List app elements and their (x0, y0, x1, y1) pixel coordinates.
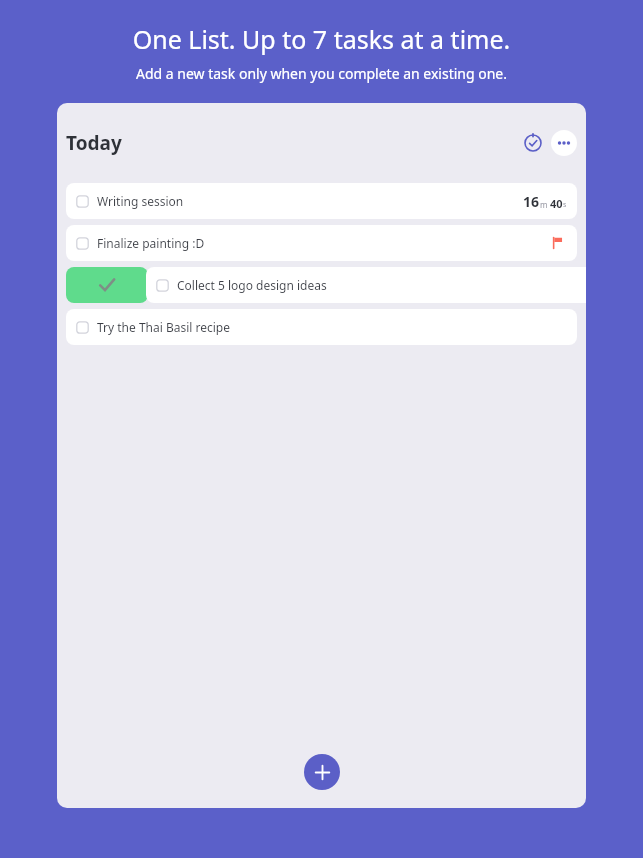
staticText: s (563, 200, 567, 210)
staticText: Collect 5 logo design ideas (177, 277, 327, 293)
button[interactable]: Try the Thai Basil recipe (66, 309, 577, 345)
button[interactable]: Writing session (66, 183, 577, 219)
staticText: Finalize painting :D (97, 235, 205, 251)
staticText: One List. Up to 7 tasks at a time. (0, 22, 643, 56)
button[interactable]: Collect 5 logo design ideas (146, 267, 586, 303)
button[interactable]: Complete all (519, 129, 547, 157)
staticText: m (540, 199, 548, 210)
staticText: Add a new task only when you complete an… (0, 64, 643, 83)
staticText: Today (66, 130, 122, 156)
staticText: Try the Thai Basil recipe (97, 319, 231, 335)
button[interactable]: Finalize painting :D (66, 225, 577, 261)
staticText: Writing session (97, 193, 184, 209)
button[interactable]: Complete task (66, 267, 148, 303)
staticText: 40 (550, 196, 563, 211)
button[interactable]: Add task (304, 754, 340, 790)
button[interactable]: Priority flag (549, 235, 565, 251)
staticText: 16 (523, 192, 540, 211)
button[interactable]: More options (551, 130, 577, 156)
